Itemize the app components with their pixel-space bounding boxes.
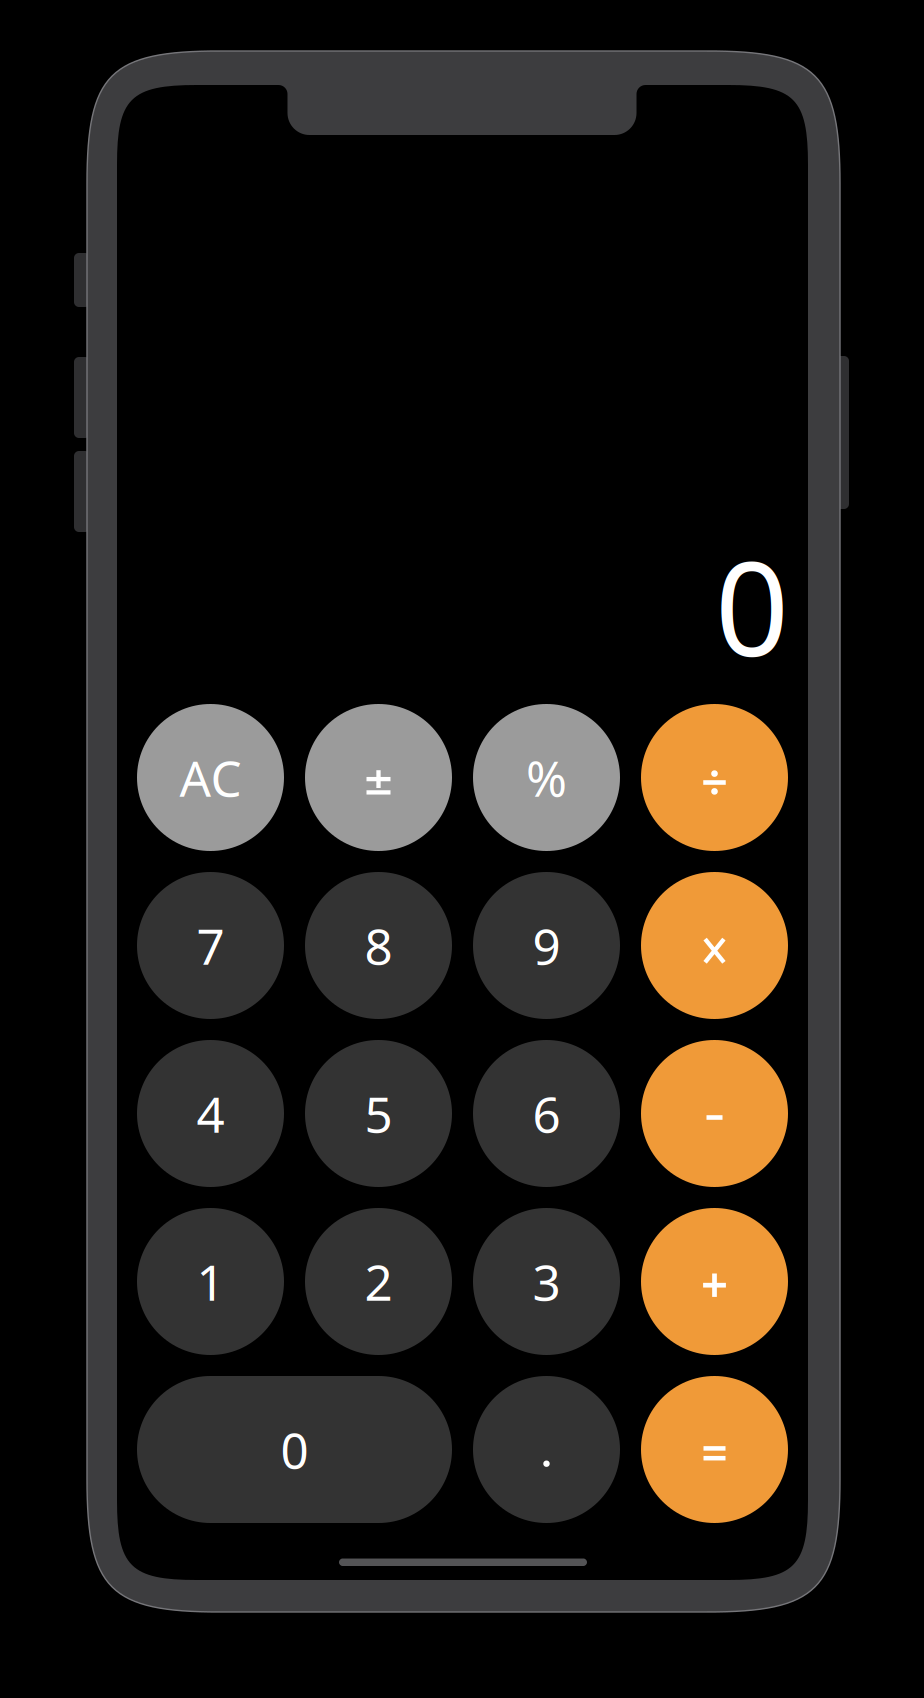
button[interactable]: 2 [305, 1208, 452, 1355]
button[interactable]: % [473, 704, 620, 851]
staticText: 1 [196, 1249, 224, 1314]
button[interactable]: Minus [641, 1040, 788, 1187]
button[interactable]: Plus [641, 1208, 788, 1355]
button[interactable]: Equals [641, 1376, 788, 1523]
staticText: 9 [532, 913, 560, 978]
button[interactable]: 7 [137, 872, 284, 1019]
staticText: 4 [196, 1081, 224, 1146]
staticText: 8 [364, 913, 392, 978]
staticText: % [526, 745, 567, 810]
button[interactable]: 5 [305, 1040, 452, 1187]
staticText: 6 [532, 1081, 560, 1146]
staticText: 0 [280, 1417, 308, 1482]
button[interactable]: Divide [641, 704, 788, 851]
button[interactable]: 3 [473, 1208, 620, 1355]
button[interactable]: 4 [137, 1040, 284, 1187]
staticText: 5 [364, 1081, 392, 1146]
staticText: 3 [532, 1249, 560, 1314]
button[interactable]: 6 [473, 1040, 620, 1187]
staticText: AC [179, 745, 241, 810]
staticText: 7 [196, 913, 224, 978]
button[interactable]: 1 [137, 1208, 284, 1355]
button[interactable]: 9 [473, 872, 620, 1019]
button[interactable]: AC [137, 704, 284, 851]
button[interactable]: 0 [137, 1376, 452, 1523]
staticText: 2 [364, 1249, 392, 1314]
button[interactable]: Decimal point [473, 1376, 620, 1523]
button[interactable]: Plus minus [305, 704, 452, 851]
staticText: 0 [715, 520, 789, 692]
button[interactable]: Multiply [641, 872, 788, 1019]
button[interactable]: 8 [305, 872, 452, 1019]
